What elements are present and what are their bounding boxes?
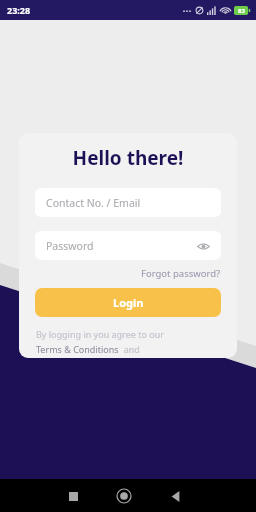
button[interactable]: Home (112, 484, 136, 508)
button[interactable]: Terms & Conditions (36, 343, 119, 355)
button[interactable]: Show password (193, 236, 213, 256)
staticText: Login (113, 295, 144, 310)
staticText: 23:28 (7, 4, 31, 16)
staticText: Terms & Conditions (36, 343, 119, 355)
button[interactable]: Back (164, 485, 186, 507)
button[interactable]: Login (35, 288, 221, 317)
button[interactable]: Forgot password? (141, 267, 221, 280)
staticText: Password (46, 239, 94, 253)
staticText: Hello there! (19, 145, 237, 171)
button[interactable]: Password (35, 231, 221, 260)
staticText: Contact No. / Email (46, 196, 141, 210)
button[interactable]: Recent apps (62, 485, 84, 507)
staticText: Forgot password? (141, 267, 221, 280)
staticText: and (119, 343, 140, 355)
button[interactable]: Contact No. / Email (35, 188, 221, 217)
staticText: 83 (238, 7, 245, 15)
staticText: By logging in you agree to our (36, 328, 164, 340)
